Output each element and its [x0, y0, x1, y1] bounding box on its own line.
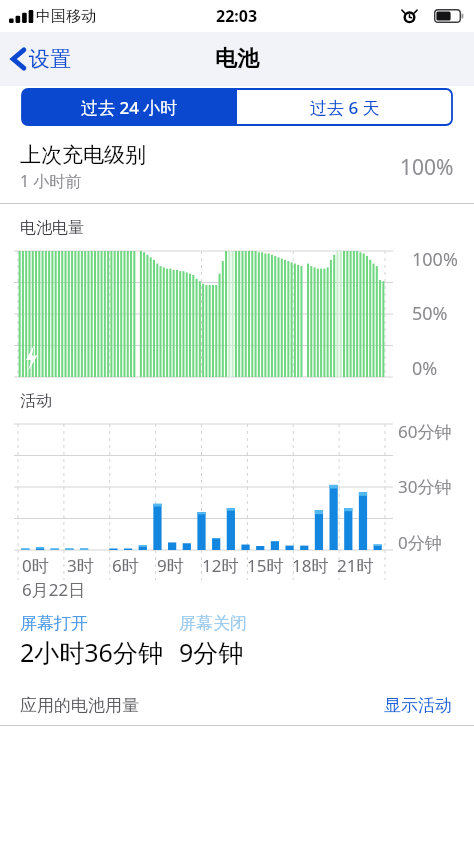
other: Battery [434, 9, 464, 23]
other: Alarm [402, 9, 417, 24]
staticText: 0% [412, 356, 438, 381]
button[interactable]: 过去 6 天 [237, 89, 452, 125]
button[interactable]: 设置 [0, 38, 83, 80]
staticText: 2小时36分钟 [20, 635, 163, 669]
button[interactable]: 显示活动 [382, 689, 454, 722]
staticText: 活动 [20, 391, 52, 411]
staticText: 9分钟 [179, 635, 244, 669]
staticText: 0分钟 [398, 531, 442, 554]
staticText: 3时 [67, 554, 94, 577]
staticText: 6月22日 [22, 578, 86, 601]
staticText: 22:03 [216, 5, 258, 27]
staticText: 屏幕打开 [20, 613, 88, 634]
staticText: 12时 [202, 554, 239, 577]
staticText: 60分钟 [398, 420, 452, 443]
staticText: 6时 [112, 554, 139, 577]
staticText: 9时 [157, 554, 184, 577]
staticText: 0时 [22, 554, 49, 577]
staticText: 100% [400, 153, 454, 182]
staticText: 21时 [337, 554, 374, 577]
staticText: 50% [412, 301, 448, 326]
button[interactable]: 过去 24 小时 [22, 89, 237, 125]
staticText: 屏幕关闭 [179, 613, 247, 634]
staticText: 上次充电级别 [20, 142, 146, 168]
staticText: 过去 6 天 [310, 96, 380, 119]
staticText: 显示活动 [384, 695, 452, 716]
staticText: 电池电量 [20, 218, 84, 238]
staticText: 100% [412, 247, 458, 272]
staticText: 应用的电池用量 [20, 695, 139, 716]
staticText: 设置 [29, 46, 71, 72]
staticText: 15时 [247, 554, 284, 577]
staticText: 30分钟 [398, 475, 452, 498]
staticText: 18时 [292, 554, 329, 577]
staticText: 电池 [215, 45, 259, 73]
staticText: 过去 24 小时 [81, 96, 178, 119]
staticText: 中国移动 [36, 7, 96, 26]
staticText: 1 小时前 [20, 170, 82, 192]
